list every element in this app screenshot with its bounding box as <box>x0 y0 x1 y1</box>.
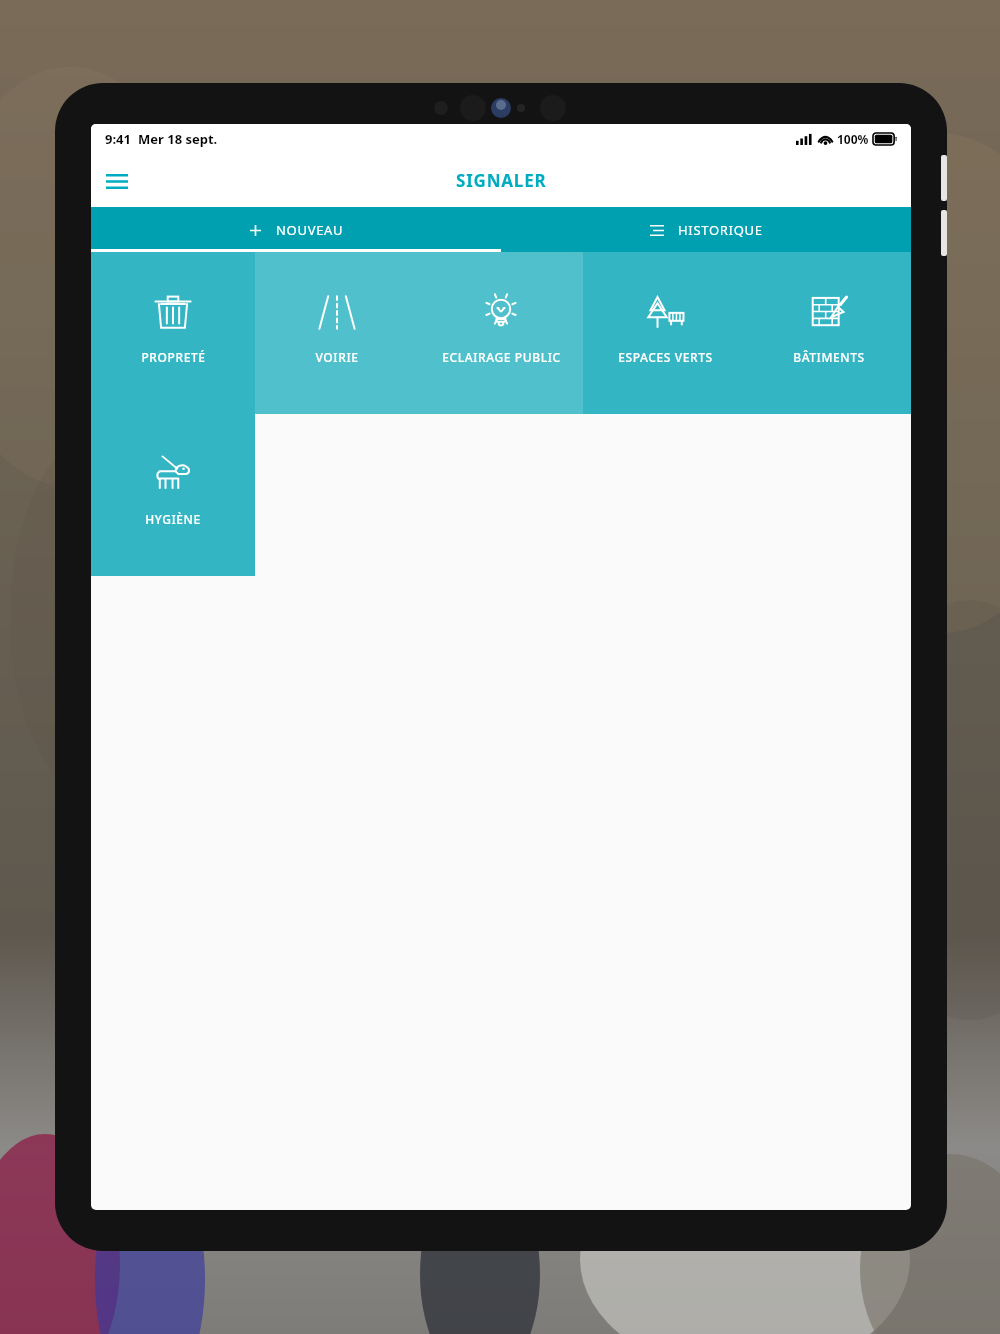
staticText: ECLAIRAGE PUBLIC <box>442 349 561 365</box>
button[interactable]: HYGIÈNE <box>91 414 255 576</box>
button[interactable]: ECLAIRAGE PUBLIC <box>419 252 583 414</box>
staticText: PROPRETÉ <box>141 349 206 365</box>
button[interactable]: BÂTIMENTS <box>747 252 911 414</box>
button[interactable]: NOUVEAU <box>91 207 501 252</box>
staticText: BÂTIMENTS <box>793 349 865 365</box>
staticText: 100% <box>837 131 869 147</box>
staticText: HYGIÈNE <box>145 511 201 527</box>
staticText: Mer 18 sept. <box>138 130 218 148</box>
staticText: NOUVEAU <box>276 221 344 239</box>
button[interactable]: PROPRETÉ <box>91 252 255 414</box>
staticText: ESPACES VERTS <box>618 349 713 365</box>
staticText: HISTORIQUE <box>678 221 763 239</box>
button[interactable]: ESPACES VERTS <box>583 252 747 414</box>
button[interactable]: HISTORIQUE <box>501 207 911 252</box>
staticText: SIGNALER <box>456 169 547 192</box>
staticText: 9:41 <box>105 130 131 148</box>
button[interactable]: VOIRIE <box>255 252 419 414</box>
staticText: VOIRIE <box>315 349 359 365</box>
button[interactable]: Menu <box>97 161 137 201</box>
